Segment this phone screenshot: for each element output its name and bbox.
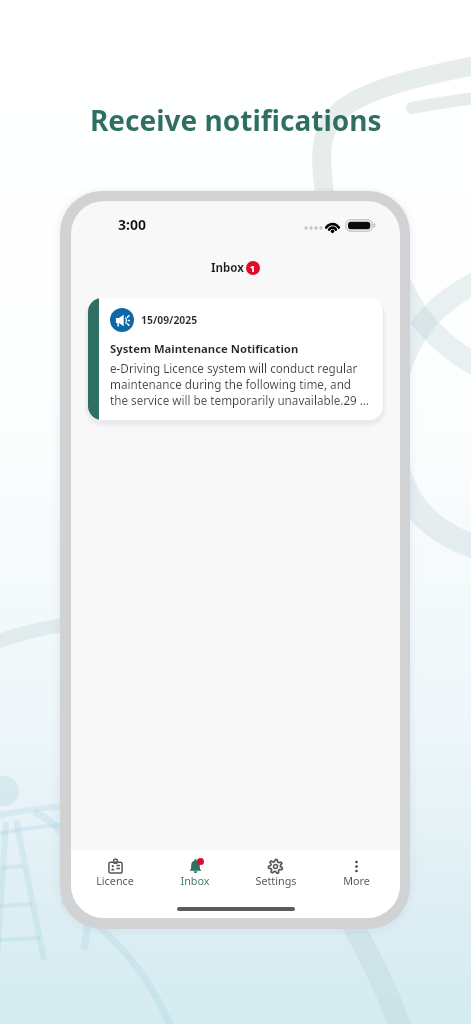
staticText: 1 [250, 262, 256, 274]
staticText: Receive notifications [90, 101, 382, 139]
staticText: Settings [255, 873, 297, 888]
button[interactable]: More [316, 850, 397, 895]
staticText: Licence [96, 873, 134, 888]
staticText: More [343, 873, 370, 888]
staticText: Inbox [180, 873, 210, 888]
staticText: Inbox [211, 260, 244, 276]
button[interactable]: Settings [235, 850, 316, 895]
staticText: 3:00 [118, 215, 146, 234]
button[interactable]: Licence [75, 850, 155, 895]
button[interactable]: Inbox [155, 850, 235, 895]
button[interactable]: 15/09/2025 [88, 298, 383, 420]
staticText: 15/09/2025 [141, 313, 198, 327]
staticText: System Maintenance Notification [110, 341, 299, 356]
staticText: e-Driving Licence system will conduct re… [110, 360, 370, 408]
